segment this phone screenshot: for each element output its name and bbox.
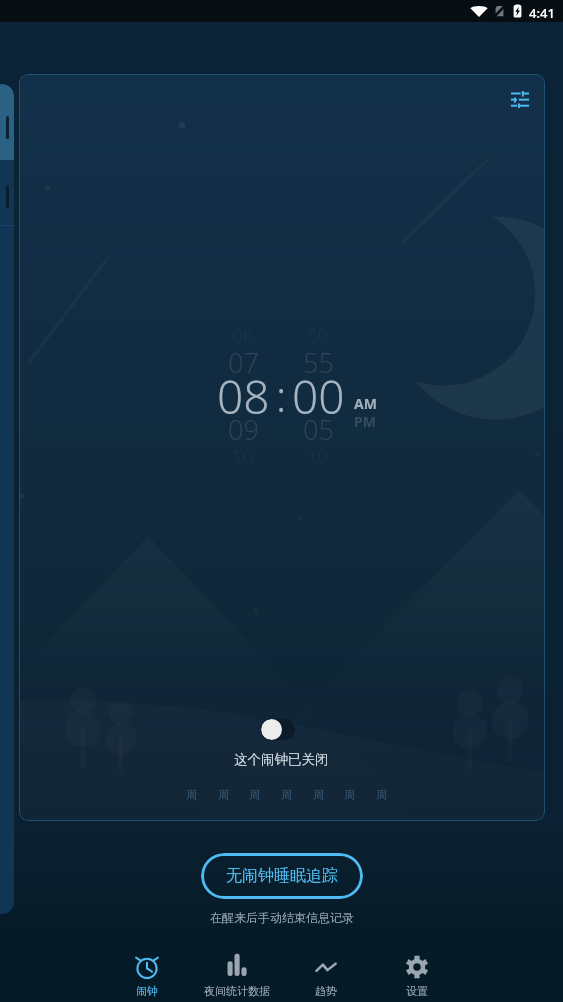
staticText: 55 xyxy=(303,344,334,381)
staticText: 4:41 xyxy=(529,4,555,22)
button[interactable]: 周 xyxy=(213,783,233,807)
staticText: 周 xyxy=(313,788,324,802)
staticText: 设置 xyxy=(406,984,428,998)
button[interactable]: 闹钟 xyxy=(103,948,191,1002)
staticText: 闹钟 xyxy=(136,984,158,998)
staticText: : xyxy=(276,367,287,424)
staticText: 无闹钟睡眠追踪 xyxy=(226,866,338,886)
button[interactable]: 周 xyxy=(276,783,296,807)
staticText: 周 xyxy=(186,788,197,802)
button[interactable]: 周 xyxy=(244,783,264,807)
button[interactable]: 无闹钟睡眠追踪 xyxy=(201,853,363,899)
staticText: 在醒来后手动结束信息记录 xyxy=(210,910,354,925)
staticText: 周 xyxy=(344,788,355,802)
staticText: 趋势 xyxy=(315,984,337,998)
staticText: 夜间统计数据 xyxy=(204,984,270,998)
button[interactable]: 周 xyxy=(181,783,201,807)
button[interactable]: 设置 xyxy=(373,948,461,1002)
button[interactable]: 周 xyxy=(371,783,391,807)
button[interactable]: 周 xyxy=(339,783,359,807)
staticText: 09 xyxy=(228,411,259,448)
staticText: 这个闹钟已关闭 xyxy=(234,751,329,768)
staticText: 周 xyxy=(376,788,387,802)
button[interactable]: 趋势 xyxy=(282,948,370,1002)
button[interactable]: 周 xyxy=(308,783,328,807)
button[interactable]: Alarm tab xyxy=(0,84,14,160)
button[interactable]: Alarm on off toggle xyxy=(261,719,295,740)
staticText: 08 xyxy=(217,365,270,428)
staticText: PM xyxy=(354,412,376,431)
staticText: 05 xyxy=(303,411,334,448)
button[interactable]: 夜间统计数据 xyxy=(193,948,281,1002)
staticText: 周 xyxy=(281,788,292,802)
button[interactable]: Alarm settings xyxy=(493,79,545,119)
staticText: 周 xyxy=(218,788,229,802)
staticText: 07 xyxy=(228,344,259,381)
staticText: 周 xyxy=(249,788,260,802)
staticText: AM xyxy=(354,394,377,413)
staticText: 00 xyxy=(292,365,345,428)
